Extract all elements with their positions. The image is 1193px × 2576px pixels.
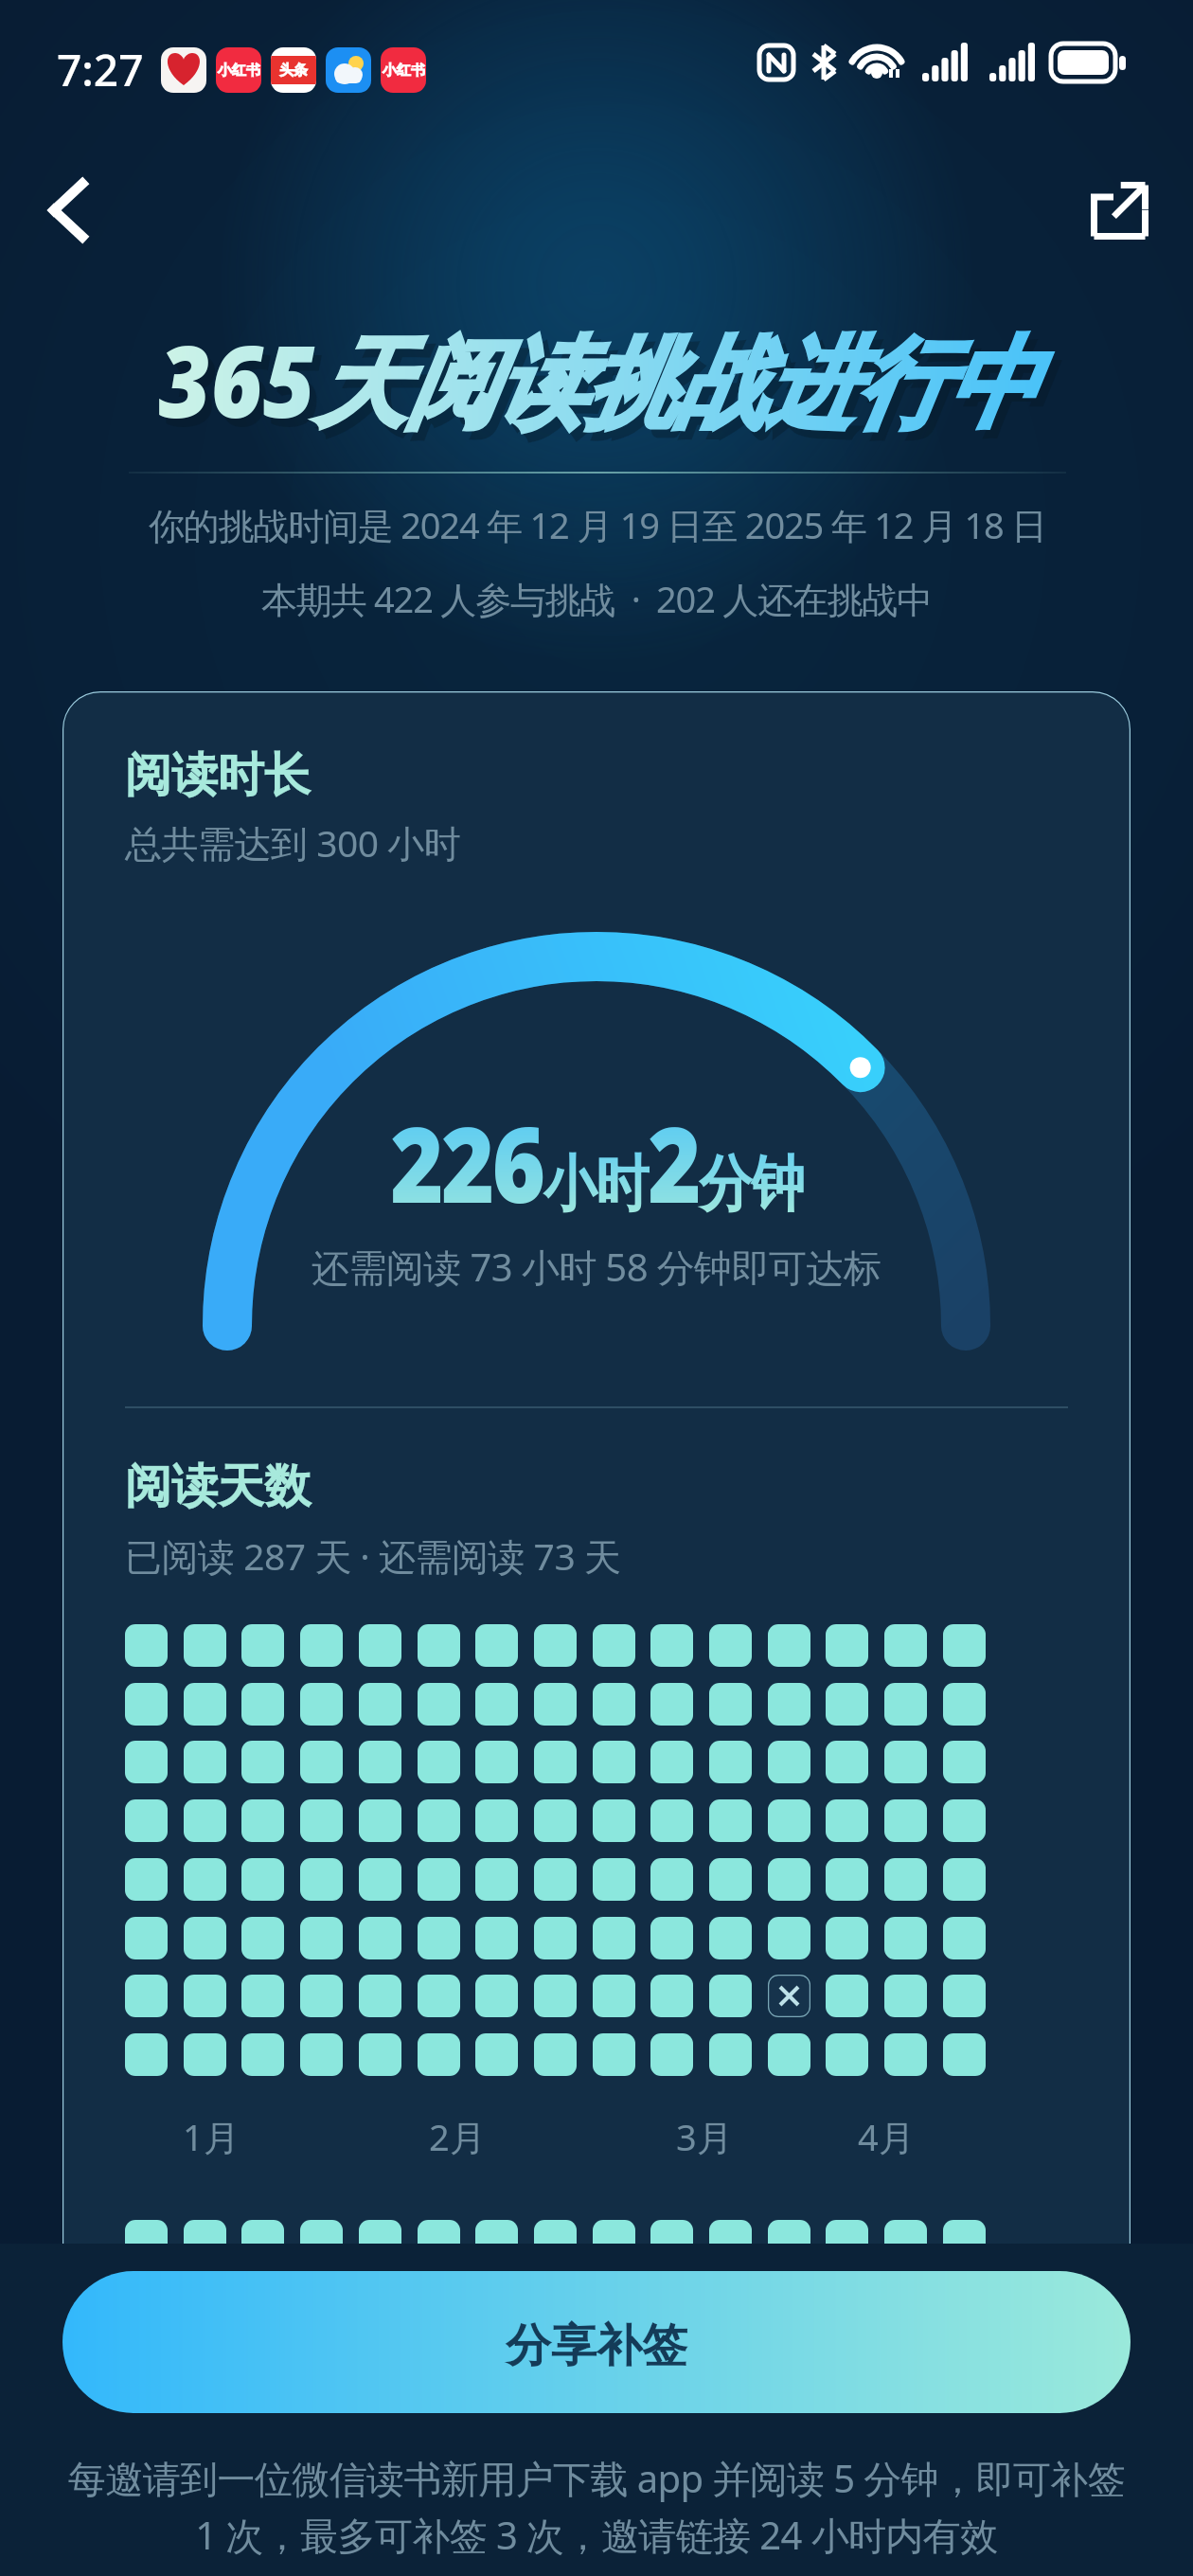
staticText: 分钟 [699, 1146, 804, 1223]
staticText: 226 [390, 1091, 544, 1233]
staticText: 你的挑战时间是 2024 年 12 月 19 日至 2025 年 12 月 18… [149, 500, 1046, 549]
button[interactable]: Back [15, 157, 121, 263]
staticText: 头条 [279, 62, 308, 80]
staticText: 3月 [676, 2112, 733, 2161]
staticText: 小红书 [218, 62, 260, 80]
button[interactable]: 分享补签 [62, 2271, 1131, 2413]
staticText: 7:27 [57, 40, 144, 99]
staticText: 2 [648, 1091, 699, 1233]
staticText: 每邀请到一位微信读书新用户下载 app 并阅读 5 分钟，即可补签 1 次，最多… [19, 2452, 1174, 2560]
staticText: 365天阅读挑战进行中 [166, 321, 1042, 456]
staticText: 本期共 422 人参与挑战 · 202 人还在挑战中 [261, 574, 933, 623]
staticText: 阅读天数 [125, 1458, 311, 1516]
staticText: 4月 [858, 2112, 915, 2161]
staticText: 阅读时长 [125, 746, 311, 805]
staticText: 总共需达到 300 小时 [125, 817, 461, 868]
staticText: 365天阅读挑战进行中 [159, 313, 1035, 447]
staticText: 1月 [183, 2112, 240, 2161]
staticText: 分享补签 [506, 2317, 687, 2374]
staticText: 2月 [429, 2112, 486, 2161]
button[interactable]: Share [1066, 157, 1172, 263]
staticText: 已阅读 287 天 · 还需阅读 73 天 [125, 1530, 621, 1581]
staticText: 小红书 [383, 62, 425, 80]
staticText: 还需阅读 73 小时 58 分钟即可达标 [312, 1241, 881, 1293]
staticText: 小时 [544, 1146, 648, 1223]
